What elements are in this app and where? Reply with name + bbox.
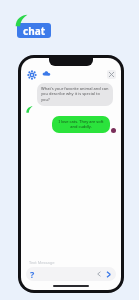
button[interactable]: What's your favorite animal and can you … [37, 83, 113, 106]
staticText: I love cats. They are soft and cuddly. [56, 119, 106, 130]
button[interactable]: Sync [41, 69, 52, 80]
staticText: ? [30, 268, 35, 280]
button[interactable]: Next [105, 271, 112, 278]
button[interactable]: Close [107, 70, 116, 79]
button[interactable]: Previous [96, 271, 102, 277]
button[interactable]: I love cats. They are soft and cuddly. [52, 116, 110, 133]
button[interactable]: Help [26, 267, 116, 281]
staticText: What's your favorite animal and can you … [41, 86, 109, 103]
staticText: chat [23, 24, 45, 38]
button[interactable]: Settings [26, 69, 37, 80]
staticText: Text Message [29, 260, 55, 265]
button[interactable]: chat [17, 23, 51, 38]
